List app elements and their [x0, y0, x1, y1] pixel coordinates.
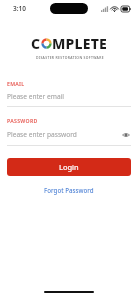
staticText: Login — [59, 162, 79, 172]
button[interactable]: Forgot Password — [38, 184, 100, 196]
button[interactable]: Please enter password — [7, 129, 131, 140]
button[interactable]: Login — [7, 158, 131, 176]
button[interactable]: Show password — [120, 129, 131, 140]
staticText: PASSWORD — [7, 117, 38, 124]
staticText: Please enter password — [7, 130, 120, 139]
staticText: C — [31, 34, 41, 53]
staticText: EMAIL — [7, 80, 25, 87]
staticText: Please enter email — [7, 92, 131, 101]
staticText: 3:10 — [13, 4, 26, 13]
staticText: Forgot Password — [44, 186, 94, 194]
button[interactable]: Please enter email — [7, 92, 131, 101]
staticText: DISASTER RESTORATION SOFTWARE — [36, 55, 104, 60]
staticText: MPLETE — [52, 34, 108, 53]
